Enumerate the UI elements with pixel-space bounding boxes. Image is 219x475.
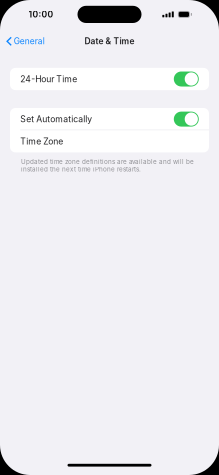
- button[interactable]: General: [0, 33, 51, 49]
- staticText: Date & Time: [84, 36, 134, 46]
- staticText: Time Zone: [20, 136, 63, 146]
- button[interactable]: Time Zone: [10, 130, 209, 152]
- staticText: Set Automatically: [20, 114, 92, 124]
- button[interactable]: 24-Hour Time: [10, 68, 209, 90]
- staticText: 24-Hour Time: [20, 74, 77, 84]
- staticText: 10:00: [28, 9, 53, 19]
- staticText: General: [14, 36, 45, 46]
- button[interactable]: Set Automatically: [10, 108, 209, 130]
- staticText: Updated time zone definitions are availa…: [21, 158, 194, 173]
